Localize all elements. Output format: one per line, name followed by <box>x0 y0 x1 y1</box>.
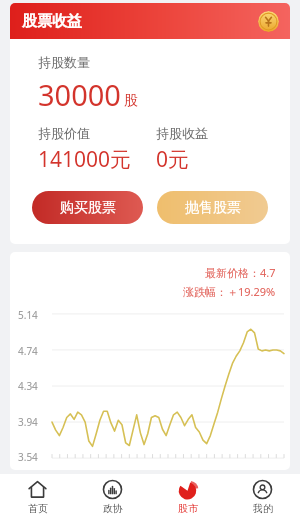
staticText: 持股价值 <box>38 125 90 141</box>
staticText: 购买股票 <box>60 199 116 217</box>
staticText: 4.74 <box>18 344 38 358</box>
staticText: 股票收益 <box>22 12 82 31</box>
staticText: 我的 <box>253 502 273 515</box>
staticText: 抛售股票 <box>185 199 241 217</box>
button[interactable]: 抛售股票 <box>157 191 268 224</box>
staticText: 持股数量 <box>38 54 90 70</box>
button[interactable]: 首页 <box>0 474 75 520</box>
staticText: 5.14 <box>18 308 38 322</box>
staticText: 4.34 <box>18 379 38 393</box>
button[interactable]: 我的 <box>225 474 300 520</box>
staticText: 首页 <box>28 502 48 515</box>
staticText: 持股收益 <box>156 125 208 141</box>
staticText: 3.54 <box>18 450 38 464</box>
button[interactable]: 政协 <box>75 474 150 520</box>
staticText: 0元 <box>156 145 190 174</box>
staticText: 股 <box>124 92 138 110</box>
staticText: 30000 <box>38 75 121 114</box>
staticText: 股市 <box>178 502 198 515</box>
staticText: 最新价格：4.7 <box>205 265 276 280</box>
button[interactable]: 股市 <box>150 474 225 520</box>
staticText: 涨跌幅：＋19.29% <box>183 284 276 299</box>
button[interactable]: 购买股票 <box>32 191 143 224</box>
staticText: 3.94 <box>18 415 38 429</box>
button[interactable]: 金币 <box>258 11 279 32</box>
staticText: 141000元 <box>38 145 132 174</box>
staticText: 政协 <box>103 502 123 515</box>
